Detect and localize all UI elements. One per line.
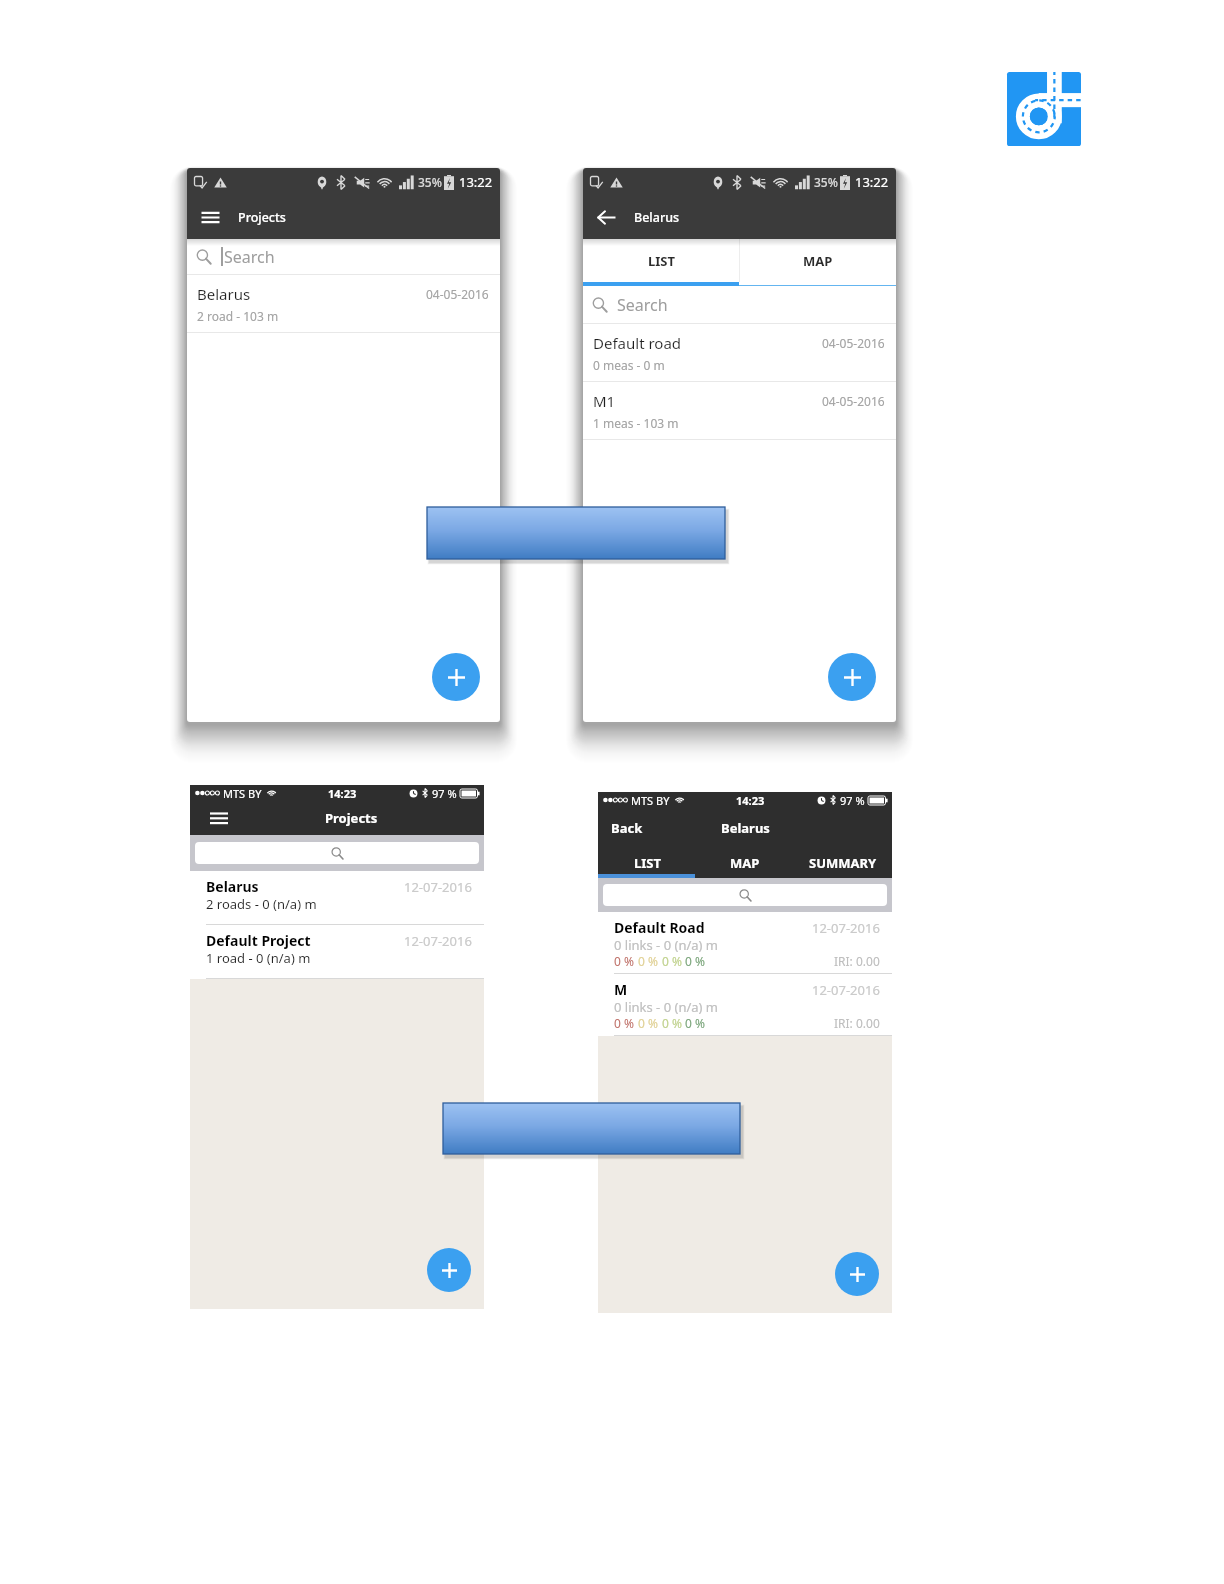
staticText: 12-07-2016 — [404, 878, 472, 896]
button[interactable]: M1 — [583, 382, 896, 440]
staticText: 35% — [418, 174, 442, 190]
staticText: 0 % — [614, 1015, 634, 1031]
staticText: Belarus — [634, 209, 680, 226]
staticText: Belarus — [206, 877, 259, 896]
button[interactable]: Search — [583, 286, 896, 323]
staticText: IRI: 0.00 — [834, 1015, 880, 1031]
staticText: 1 meas - 103 m — [593, 415, 679, 431]
staticText: 0 % — [685, 1015, 705, 1031]
staticText: 35% — [814, 174, 838, 190]
staticText: Belarus — [197, 284, 251, 304]
staticText: MAP — [803, 252, 833, 270]
staticText: 13:22 — [459, 173, 493, 191]
staticText: Default Project — [206, 931, 311, 950]
staticText: MTS BY — [223, 786, 262, 801]
staticText: 2 road - 103 m — [197, 308, 279, 324]
button[interactable]: SUMMARY — [794, 848, 892, 878]
staticText: 0 % — [638, 1015, 658, 1031]
button[interactable]: Add — [828, 653, 876, 701]
button[interactable]: LIST — [598, 848, 696, 878]
button[interactable]: Search — [187, 239, 500, 274]
staticText: 14:23 — [328, 786, 357, 801]
button[interactable]: MAP — [740, 239, 896, 282]
button[interactable]: Default road — [583, 324, 896, 382]
button[interactable]: Add — [427, 1248, 471, 1292]
staticText: 12-07-2016 — [404, 932, 472, 950]
button[interactable]: MAP — [696, 848, 794, 878]
staticText: IRI: 0.00 — [834, 953, 880, 969]
button[interactable]: Belarus — [187, 275, 500, 333]
button[interactable]: Default Project — [190, 925, 484, 979]
staticText: 12-07-2016 — [812, 981, 880, 999]
staticText: 04-05-2016 — [822, 335, 885, 351]
button[interactable]: Back — [585, 196, 628, 239]
staticText: 14:23 — [736, 793, 765, 808]
button[interactable]: Search — [603, 884, 887, 906]
button[interactable]: LIST — [583, 239, 739, 282]
staticText: M1 — [593, 391, 616, 411]
staticText: SUMMARY — [809, 854, 877, 872]
staticText: 04-05-2016 — [822, 393, 885, 409]
staticText: 0 % — [662, 953, 682, 969]
button[interactable]: Back — [611, 819, 643, 837]
button[interactable]: Open navigation menu — [207, 806, 231, 830]
staticText: 0 meas - 0 m — [593, 357, 665, 373]
staticText: 97 % — [432, 786, 457, 801]
button[interactable]: Add — [835, 1252, 879, 1296]
staticText: 13:22 — [855, 173, 889, 191]
staticText: MAP — [730, 854, 760, 872]
staticText: Belarus — [721, 819, 770, 837]
staticText: Search — [617, 294, 668, 316]
staticText: 97 % — [840, 793, 865, 808]
staticText: 0 % — [638, 953, 658, 969]
staticText: 2 roads - 0 (n/a) m — [206, 895, 317, 913]
staticText: Back — [611, 819, 643, 837]
staticText: Projects — [238, 209, 286, 226]
button[interactable]: Default Road — [598, 912, 892, 974]
button[interactable]: Belarus — [190, 871, 484, 925]
staticText: 0 links - 0 (n/a) m — [614, 936, 718, 954]
staticText: LIST — [634, 854, 661, 872]
staticText: 0 % — [685, 953, 705, 969]
staticText: LIST — [648, 252, 675, 270]
staticText: MTS BY — [631, 793, 670, 808]
staticText: M — [614, 980, 628, 999]
button[interactable]: Add — [432, 653, 480, 701]
staticText: 04-05-2016 — [426, 286, 489, 302]
staticText: 0 % — [614, 953, 634, 969]
button[interactable]: Search — [195, 842, 479, 864]
staticText: Projects — [325, 809, 378, 827]
staticText: 0 links - 0 (n/a) m — [614, 998, 718, 1016]
button[interactable]: Open navigation menu — [189, 196, 232, 239]
staticText: Search — [224, 246, 275, 268]
staticText: Default road — [593, 333, 682, 353]
staticText: 1 road - 0 (n/a) m — [206, 949, 311, 967]
staticText: 12-07-2016 — [812, 919, 880, 937]
staticText: 0 % — [662, 1015, 682, 1031]
button[interactable]: M — [598, 974, 892, 1036]
staticText: Default Road — [614, 918, 705, 937]
